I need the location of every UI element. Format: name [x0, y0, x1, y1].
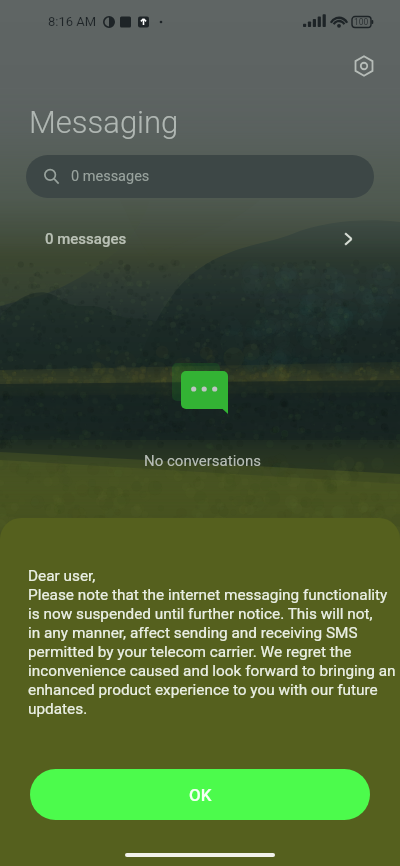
staticText: OK	[189, 785, 212, 805]
staticText: 0 messages	[71, 168, 150, 185]
button[interactable]: 0 messages	[0, 222, 400, 256]
button[interactable]: OK	[30, 769, 370, 820]
staticText: No conversations	[144, 452, 261, 470]
staticText: 8:16 AM	[48, 14, 97, 29]
staticText: Dear user, Please note that the internet…	[28, 567, 398, 717]
button[interactable]: 0 messages	[26, 155, 374, 198]
button[interactable]: Settings	[346, 48, 382, 84]
staticText: 0 messages	[45, 230, 127, 248]
staticText: 100	[354, 17, 369, 27]
staticText: Messaging	[29, 104, 179, 140]
